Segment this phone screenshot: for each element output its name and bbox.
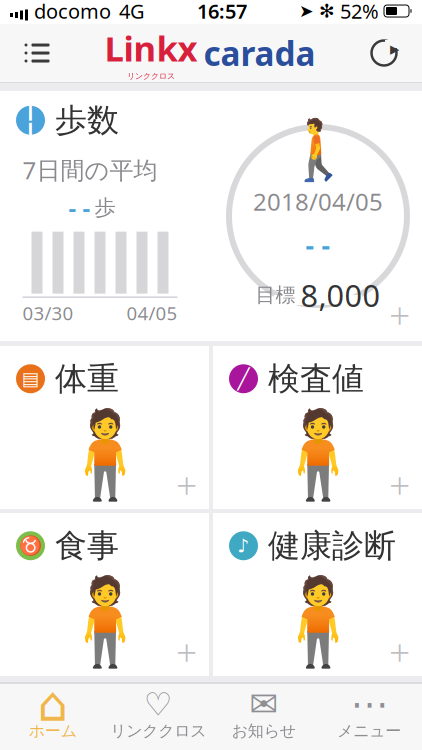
button[interactable]: ⋯ (316, 683, 422, 745)
staticText: 歩数 (55, 101, 119, 140)
staticText: + (389, 459, 410, 509)
staticText: ホーム (29, 721, 77, 741)
staticText: 4G (119, 0, 145, 24)
button[interactable]: ♪ (213, 513, 422, 676)
staticText: 🧍 (264, 573, 370, 671)
staticText: ➤ (299, 1, 314, 21)
staticText: - - (305, 227, 330, 263)
staticText: Linkx (104, 25, 197, 71)
staticText: ✻ (319, 0, 335, 22)
button[interactable]: ▤ (0, 346, 209, 509)
staticText: docomo (34, 0, 111, 24)
staticText: ♉ (19, 535, 42, 556)
button[interactable]: メニュー (8, 24, 66, 82)
staticText: - - (68, 192, 90, 224)
staticText: + (176, 626, 197, 676)
button[interactable]: ♡ (105, 683, 211, 745)
staticText: ♡ (144, 686, 173, 722)
staticText: 03/30 (22, 301, 73, 325)
staticText: ╱ (237, 367, 249, 390)
staticText: 2018/04/05 (253, 185, 383, 217)
button[interactable]: ✉ (211, 683, 316, 745)
staticText: 目標 (255, 283, 295, 307)
staticText: + (389, 289, 410, 339)
staticText: ♪ (237, 535, 249, 556)
staticText: 16:57 (197, 0, 247, 24)
staticText: 検査値 (268, 359, 364, 398)
button[interactable]: 更新 (354, 24, 414, 82)
staticText: リンククロス (110, 721, 206, 741)
staticText: 🚶 (281, 116, 354, 183)
button[interactable]: ╱ (213, 346, 422, 509)
button[interactable]: ♉ (0, 513, 209, 676)
staticText: ⋯ (351, 683, 388, 725)
staticText: ▸ (390, 38, 399, 59)
staticText: 健康診断 (268, 526, 396, 565)
staticText: リンククロス (127, 71, 175, 81)
button[interactable]: ❙❙ (0, 91, 422, 341)
staticText: ⌂ (38, 677, 68, 731)
staticText: 52% (340, 0, 379, 24)
staticText: お知らせ (232, 721, 296, 741)
staticText: + (389, 626, 410, 676)
staticText: 体重 (55, 359, 119, 398)
staticText: carada (203, 31, 315, 75)
staticText: 🧍 (51, 573, 157, 671)
button[interactable]: ⌂ (0, 683, 105, 745)
staticText: 食事 (55, 526, 119, 565)
staticText: 04/05 (126, 301, 177, 325)
staticText: 8,000 (300, 275, 380, 315)
staticText: 🧍 (51, 406, 157, 504)
staticText: ❙❙ (23, 101, 38, 140)
staticText: ✉ (249, 684, 278, 724)
staticText: + (176, 459, 197, 509)
staticText: 7日間の平均 (22, 154, 157, 186)
staticText: ▤ (21, 368, 39, 389)
staticText: メニュー (337, 721, 401, 741)
staticText: 歩 (94, 195, 115, 221)
button[interactable]: Linkx (104, 24, 315, 82)
staticText: 🧍 (264, 406, 370, 504)
